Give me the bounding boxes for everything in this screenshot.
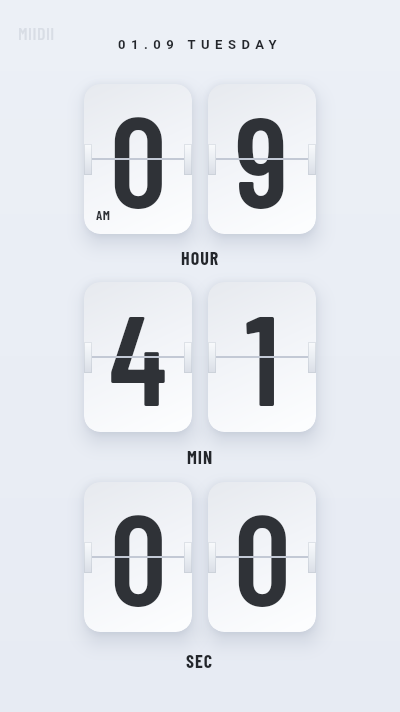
staticText: 0: [234, 482, 291, 630]
button[interactable]: 9: [208, 84, 316, 234]
staticText: MIIDII: [18, 22, 55, 44]
staticText: HOUR: [181, 247, 220, 269]
staticText: SEC: [186, 650, 214, 672]
staticText: 0: [110, 482, 167, 630]
staticText: 01.09 TUESDAY: [118, 37, 283, 52]
staticText: 1: [245, 282, 280, 430]
staticText: 9: [235, 84, 289, 232]
button[interactable]: 4: [84, 282, 192, 432]
staticText: 0: [110, 84, 167, 232]
button[interactable]: 1: [208, 282, 316, 432]
button[interactable]: 0: [84, 482, 192, 632]
staticText: MIN: [187, 446, 214, 468]
staticText: 4: [109, 282, 167, 430]
button[interactable]: 0: [208, 482, 316, 632]
button[interactable]: 0: [84, 84, 192, 234]
staticText: AM: [96, 207, 111, 223]
